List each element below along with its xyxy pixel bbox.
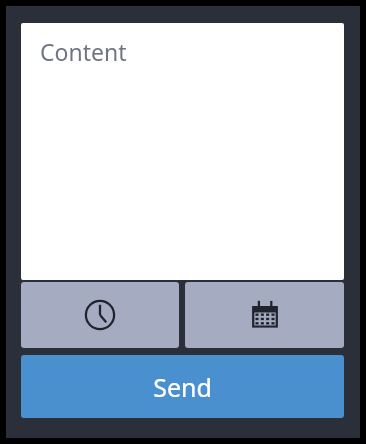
button[interactable]: Set date: [185, 282, 344, 348]
button[interactable]: Send: [21, 355, 344, 418]
button[interactable]: Set time: [21, 282, 179, 348]
button[interactable]: Content: [21, 23, 344, 280]
staticText: Send: [153, 370, 212, 404]
staticText: Content: [40, 36, 127, 67]
